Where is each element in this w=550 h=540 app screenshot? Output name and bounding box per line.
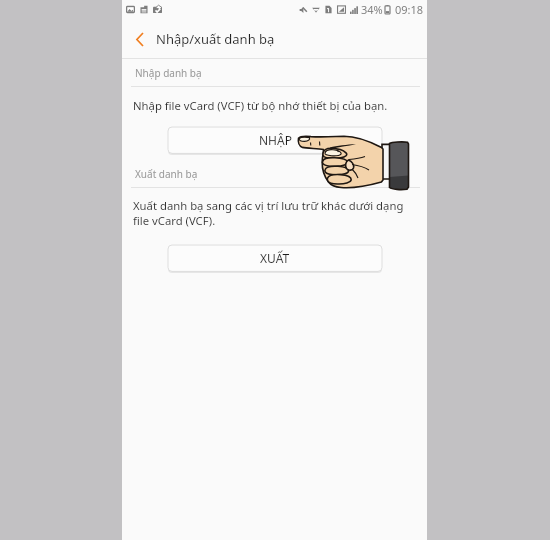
staticText: Xuất danh bạ bbox=[135, 167, 198, 181]
staticText: NHẬP bbox=[259, 132, 292, 148]
staticText: 34% bbox=[361, 2, 383, 17]
staticText: XUẤT bbox=[260, 250, 290, 266]
button[interactable]: Back bbox=[125, 21, 153, 57]
staticText: Nhập file vCard (VCF) từ bộ nhớ thiết bị… bbox=[133, 98, 388, 113]
staticText: Nhập danh bạ bbox=[135, 66, 202, 80]
staticText: Nhập/xuất danh bạ bbox=[156, 30, 275, 48]
staticText: Xuất danh bạ sang các vị trí lưu trữ khá… bbox=[133, 198, 415, 228]
staticText: 09:18 bbox=[395, 2, 424, 17]
button[interactable]: XUẤT bbox=[168, 245, 382, 273]
button[interactable]: NHẬP bbox=[168, 127, 382, 155]
